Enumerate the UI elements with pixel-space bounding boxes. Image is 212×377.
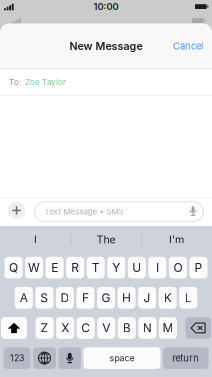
button[interactable]: 123 [3,347,30,369]
button[interactable]: G [97,287,115,309]
button[interactable]: P [189,257,207,278]
staticText: E [51,260,58,275]
staticText: I [156,260,159,275]
staticText: Z [41,321,49,335]
button[interactable]: O [169,257,187,278]
button[interactable]: W [25,257,43,278]
staticText: S [40,290,48,305]
button[interactable]: R [66,257,84,278]
button[interactable]: C [77,317,95,339]
button[interactable]: space [83,347,160,369]
button[interactable]: Y [107,257,125,278]
button[interactable]: H [117,287,135,309]
staticText: Q [9,260,18,275]
staticText: X [61,321,69,335]
staticText: New Message [69,39,142,52]
staticText: space [109,353,134,363]
staticText: I'm [169,233,184,246]
staticText: P [194,260,202,275]
button[interactable]: The [71,226,141,253]
button[interactable]: return [163,347,208,369]
staticText: The [96,233,115,246]
staticText: 10:00 [93,1,118,12]
staticText: A [20,290,28,305]
staticText: Zoe Taylor [25,77,66,87]
button[interactable]: F [76,287,94,309]
staticText: F [82,290,89,305]
button[interactable]: V [97,317,115,339]
button[interactable]: U [128,257,146,278]
button[interactable]: M [159,317,177,339]
staticText: O [173,260,182,275]
button[interactable]: E [46,257,64,278]
staticText: I [34,233,37,246]
button[interactable]: I'm [141,226,212,253]
button[interactable]: I [148,257,166,278]
staticText: J [144,290,151,305]
button[interactable]: Text Message • SMS [34,202,203,222]
staticText: return [172,352,199,364]
staticText: G [101,290,110,305]
staticText: H [122,290,131,305]
button[interactable]: N [138,317,156,339]
button[interactable]: Zoe Taylor [25,77,66,87]
staticText: M [162,321,173,335]
staticText: N [143,321,152,335]
button[interactable]: Cancel [164,31,212,61]
staticText: W [28,260,40,275]
button[interactable]: I [0,226,71,253]
button[interactable]: B [118,317,136,339]
staticText: 123 [10,353,24,363]
staticText: C [81,321,90,335]
staticText: T [92,260,100,275]
staticText: U [132,260,141,275]
staticText: Cancel [173,40,203,52]
staticText: Y [112,260,120,275]
staticText: L [185,290,192,305]
staticText: Text Message • SMS [44,207,123,217]
staticText: R [71,260,79,275]
staticText: K [164,290,172,305]
staticText: V [102,321,110,335]
staticText: D [60,290,69,305]
button[interactable]: X [56,317,74,339]
button[interactable]: T [87,257,105,278]
button[interactable]: J [138,287,156,309]
button[interactable]: Next keyboard [33,347,56,369]
staticText: To: [9,77,21,87]
button[interactable]: Add attachment [8,202,25,219]
button[interactable]: Delete [185,317,211,339]
button[interactable]: Q [4,257,22,278]
button[interactable]: S [35,287,53,309]
button[interactable]: A [15,287,33,309]
button[interactable]: Z [36,317,54,339]
button[interactable]: K [159,287,177,309]
button[interactable]: Shift [1,317,27,339]
staticText: B [123,321,131,335]
button[interactable]: Dictate [185,204,201,220]
button[interactable]: D [56,287,74,309]
button[interactable]: L [179,287,197,309]
button[interactable]: Dictate [58,347,81,369]
